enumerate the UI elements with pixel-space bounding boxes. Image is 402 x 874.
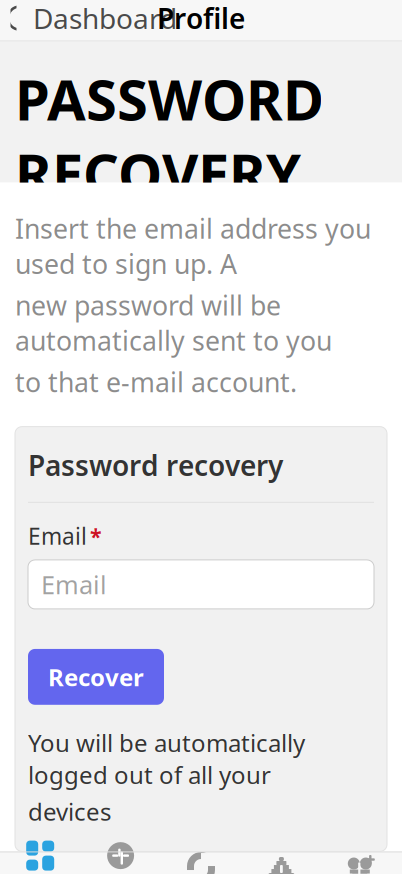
button[interactable]: Recover [28,649,164,705]
button[interactable]: AED [322,847,402,874]
staticText: Recover [48,661,144,693]
staticText: Profile [157,0,245,37]
staticText: Insert the email address you used to sig… [15,211,371,281]
button[interactable]: Dashboard [0,0,187,45]
staticText: to that e-mail account. [15,364,297,400]
staticText: You will be automatically logged out of … [28,727,305,790]
staticText: devices [28,795,111,827]
staticText: * [90,522,102,550]
button[interactable]: Call [161,847,241,874]
button[interactable]: Dashboard [0,835,80,874]
staticText: RECOVERY [15,136,301,210]
button[interactable]: Email [28,560,374,609]
button[interactable]: Missions [241,847,322,874]
button[interactable]: Heart rate [80,835,161,874]
staticText: Password recovery [28,447,283,484]
staticText: Email [28,521,87,551]
staticText: PASSWORD [15,62,324,136]
staticText: Email [41,568,107,601]
staticText: Dashboard [33,0,177,37]
staticText: new password will be automatically sent … [15,287,332,358]
